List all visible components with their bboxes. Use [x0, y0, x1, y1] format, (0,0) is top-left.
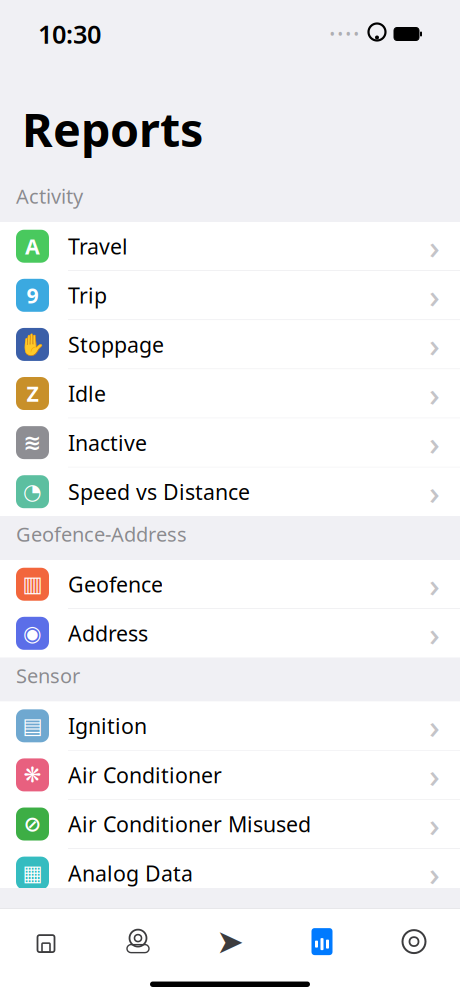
staticText: Air Conditioner Misused	[68, 810, 311, 838]
staticText: ›	[429, 900, 440, 944]
button[interactable]: ⊘	[0, 800, 460, 849]
staticText: ▦	[22, 861, 42, 885]
button[interactable]: 9	[0, 271, 460, 320]
staticText: Z	[26, 379, 38, 408]
staticText: Idle	[68, 379, 106, 408]
staticText: ✋	[19, 332, 46, 357]
staticText: ❋	[23, 763, 41, 787]
staticText: Analog Data	[68, 859, 193, 887]
staticText: ➤	[216, 923, 244, 960]
staticText: Inactive	[68, 428, 147, 457]
button[interactable]: ❋	[0, 751, 460, 800]
staticText: ▥	[22, 572, 42, 596]
button[interactable]: Settings	[368, 913, 460, 971]
staticText: ›	[429, 470, 440, 514]
staticText: Reports	[22, 98, 203, 160]
staticText: Stoppage	[68, 330, 164, 359]
staticText: ›	[429, 802, 440, 846]
staticText: Activity	[16, 183, 83, 209]
button[interactable]: ▦	[0, 849, 460, 898]
staticText: ›	[429, 562, 440, 606]
button[interactable]: ▥	[0, 560, 460, 609]
staticText: A	[25, 232, 40, 260]
staticText: ▤	[22, 714, 42, 738]
staticText: ›	[429, 851, 440, 895]
staticText: ›	[429, 273, 440, 317]
staticText: Geofence	[68, 570, 163, 598]
staticText: ›	[429, 322, 440, 367]
staticText: 10:30	[38, 17, 101, 51]
staticText: ➤	[216, 923, 244, 960]
staticText: ›	[429, 753, 440, 797]
staticText: ›	[429, 611, 440, 655]
staticText: Air Conditioner	[68, 761, 222, 789]
button[interactable]: ◔	[0, 467, 460, 516]
staticText: Ignition	[68, 712, 147, 740]
button[interactable]: Home	[0, 913, 92, 971]
staticText: ◔	[23, 480, 42, 504]
staticText: Speed vs Distance	[68, 478, 250, 506]
staticText: RFID Data	[68, 908, 169, 936]
staticText: ◉	[23, 621, 42, 645]
button[interactable]: Reports	[276, 913, 368, 971]
button[interactable]: A	[0, 222, 460, 271]
staticText: ›	[429, 224, 440, 268]
button[interactable]: Z	[0, 369, 460, 418]
staticText: Address	[68, 619, 148, 647]
staticText: ⊘	[23, 812, 41, 836]
staticText: ≋	[23, 430, 41, 455]
staticText: Geofence-Address	[16, 521, 187, 547]
button[interactable]: ◉	[0, 609, 460, 658]
staticText: ›	[429, 704, 440, 748]
staticText: Sensor	[16, 662, 80, 689]
button[interactable]: Navigate	[184, 913, 276, 971]
button[interactable]: ≈	[0, 898, 460, 946]
staticText: Travel	[68, 232, 128, 260]
staticText: • • • •	[330, 26, 359, 42]
staticText: 9	[26, 281, 38, 309]
button[interactable]: ≋	[0, 418, 460, 467]
button[interactable]: Places	[92, 913, 184, 971]
staticText: ›	[429, 371, 440, 416]
button[interactable]: ✋	[0, 320, 460, 369]
staticText: Trip	[68, 281, 107, 309]
staticText: ›	[429, 420, 440, 465]
button[interactable]: ▤	[0, 702, 460, 751]
